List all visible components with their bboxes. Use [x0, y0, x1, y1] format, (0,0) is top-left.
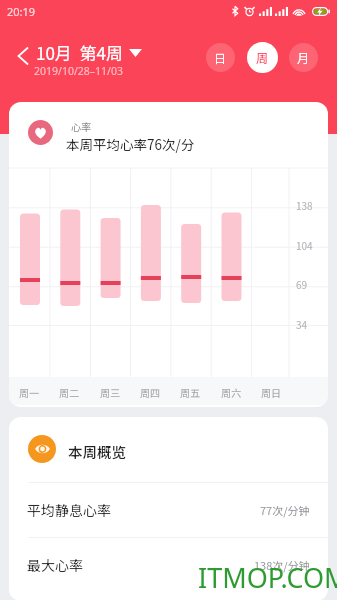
staticText: 138次/分钟	[254, 557, 310, 573]
button[interactable]: Weekly overview	[28, 435, 56, 463]
staticText: 平均静息心率	[27, 500, 111, 520]
staticText: 77次/分钟	[260, 502, 310, 518]
staticText: 最大心率	[27, 555, 83, 575]
staticText: 69	[296, 277, 308, 291]
button[interactable]: Back	[9, 38, 37, 74]
staticText: 周日	[261, 385, 281, 399]
staticText: 周二	[59, 385, 79, 399]
staticText: ITMOP.COM	[198, 559, 337, 596]
staticText: 心率	[71, 119, 91, 133]
staticText: 20:19	[7, 4, 36, 19]
staticText: 10月 第4周	[36, 40, 123, 65]
staticText: 日	[214, 49, 227, 66]
staticText: 本周概览	[68, 441, 126, 462]
button[interactable]: 10月 第4周	[36, 40, 142, 65]
staticText: 周	[256, 49, 269, 66]
staticText: 138	[296, 198, 313, 212]
staticText: 月	[297, 49, 310, 66]
button[interactable]: 平均静息心率	[9, 482, 328, 537]
button[interactable]: 月	[289, 43, 318, 72]
button[interactable]: 最大心率	[9, 537, 328, 592]
button[interactable]: 日	[206, 43, 235, 72]
staticText: 周六	[221, 385, 241, 399]
staticText: 104	[296, 238, 313, 252]
staticText: 周三	[100, 385, 120, 399]
button[interactable]: 周	[247, 42, 278, 73]
staticText: 34	[296, 317, 308, 331]
staticText: 2019/10/28–11/03	[34, 64, 124, 78]
staticText: 本周平均心率76次/分	[66, 134, 195, 154]
staticText: 周四	[140, 385, 160, 399]
staticText: 周五	[180, 385, 200, 399]
staticText: 周一	[19, 385, 39, 399]
